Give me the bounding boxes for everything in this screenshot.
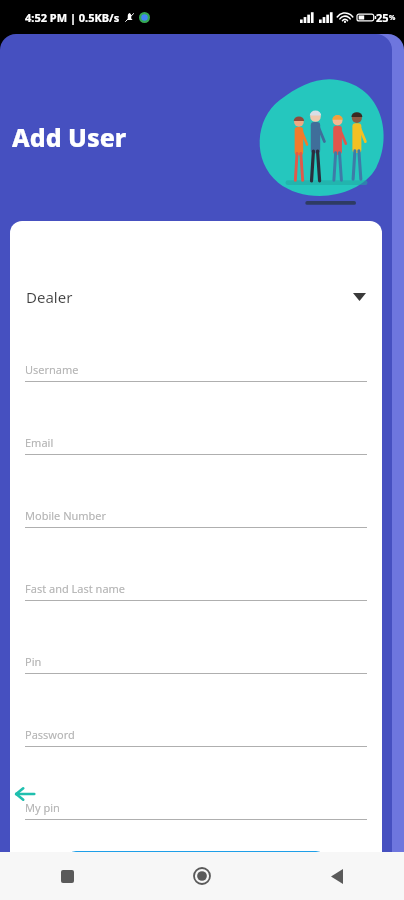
staticText: Email [25,435,54,450]
staticText: % [389,13,396,23]
button[interactable]: Back [269,852,404,900]
staticText: Password [25,727,75,742]
staticText: Fast and Last name [25,581,126,596]
button[interactable]: My pin [10,800,382,826]
staticText: Dealer [26,287,73,307]
staticText: My pin [25,800,60,815]
button[interactable]: Password [10,727,382,753]
button[interactable]: Email [10,435,382,461]
button[interactable]: Back [5,774,45,814]
staticText: 25 [376,10,389,25]
button[interactable]: Username [10,362,382,388]
button[interactable]: Fast and Last name [10,581,382,607]
other: Open dropdown [353,293,366,301]
staticText: Add User [12,120,127,154]
button[interactable]: Recent apps [0,852,134,900]
button[interactable] [66,851,326,881]
staticText: 4:52 PM | 0.5KB/s [25,10,120,25]
staticText: Username [25,362,79,377]
button[interactable]: Pin [10,654,382,680]
button[interactable]: Mobile Number [10,508,382,534]
button[interactable]: Dealer [10,277,382,317]
staticText: Pin [25,654,42,669]
staticText: Mobile Number [25,508,107,523]
button[interactable]: Home [134,852,269,900]
